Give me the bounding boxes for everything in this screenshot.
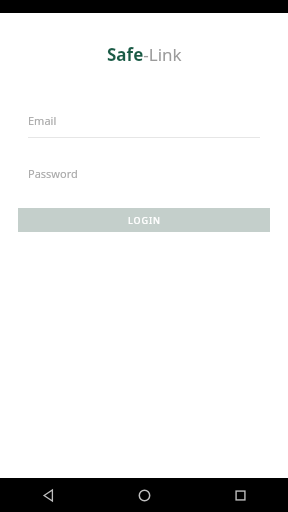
button[interactable]: LOGIN (18, 208, 270, 232)
button[interactable]: Password (0, 166, 288, 191)
staticText: Safe-Link (107, 43, 182, 66)
staticText: LOGIN (128, 214, 161, 226)
button[interactable]: Recent apps (192, 478, 288, 512)
staticText: Password (28, 166, 78, 181)
button[interactable]: Email (0, 113, 288, 138)
staticText: Email (28, 113, 57, 128)
button[interactable]: Home (96, 478, 192, 512)
button[interactable]: Back (0, 478, 96, 512)
